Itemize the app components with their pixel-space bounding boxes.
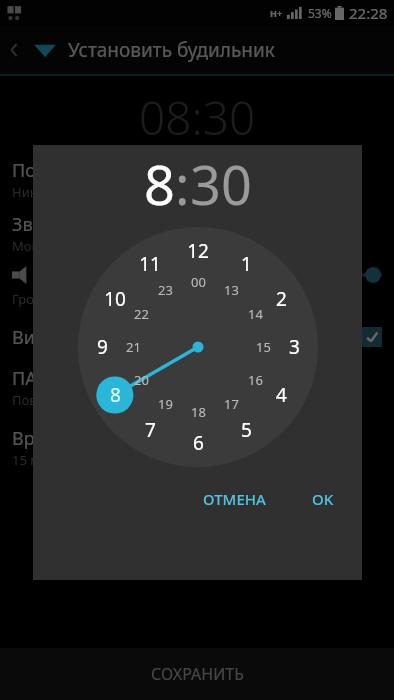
staticText: 18 bbox=[191, 403, 206, 421]
staticText: ПАУЗА bbox=[12, 366, 70, 391]
button[interactable]: 16 bbox=[240, 365, 270, 395]
button[interactable]: 18 bbox=[183, 397, 213, 427]
staticText: СОХРАНИТЬ bbox=[151, 663, 244, 685]
button[interactable]: ОТМЕНА bbox=[189, 481, 280, 517]
staticText: Время до повтора звонка bbox=[12, 426, 236, 451]
staticText: 00 bbox=[191, 273, 206, 291]
button[interactable]: 8 bbox=[100, 380, 130, 410]
button[interactable]: Время до повтора звонка bbox=[0, 420, 394, 474]
button[interactable]: 9 bbox=[87, 332, 117, 362]
button[interactable]: 7 bbox=[135, 415, 165, 445]
button[interactable]: 3 bbox=[279, 332, 309, 362]
staticText: 6 bbox=[193, 430, 204, 456]
staticText: 5 bbox=[241, 417, 252, 443]
staticText: H+ bbox=[270, 7, 283, 19]
staticText: Мой сигнал bbox=[12, 237, 86, 255]
staticText: 13 bbox=[224, 281, 239, 299]
staticText: 22:28 bbox=[349, 3, 388, 23]
staticText: 9 bbox=[97, 334, 108, 360]
staticText: 2 bbox=[276, 286, 287, 312]
staticText: Повторный сигнал будильника bbox=[12, 391, 208, 409]
button[interactable]: 2 bbox=[266, 284, 296, 314]
staticText: 1 bbox=[241, 251, 252, 277]
button[interactable]: 11 bbox=[135, 249, 165, 279]
button[interactable]: 13 bbox=[216, 275, 246, 305]
staticText: : bbox=[175, 147, 190, 221]
button[interactable]: 1 bbox=[231, 249, 261, 279]
staticText: 17 bbox=[224, 395, 239, 413]
staticText: 23 bbox=[158, 281, 173, 299]
staticText: Громкость bbox=[12, 290, 78, 308]
staticText: 20 bbox=[134, 371, 149, 389]
staticText: 15 bbox=[256, 338, 271, 356]
button[interactable]: СОХРАНИТЬ bbox=[0, 648, 394, 700]
staticText: OK bbox=[312, 489, 334, 509]
button[interactable]: 4 bbox=[266, 380, 296, 410]
staticText: 12 bbox=[187, 238, 209, 264]
button[interactable]: 14 bbox=[240, 299, 270, 329]
button[interactable]: 19 bbox=[150, 389, 180, 419]
button[interactable]: 10 bbox=[100, 284, 130, 314]
staticText: 15 минут bbox=[12, 451, 69, 469]
button[interactable]: 15 bbox=[248, 332, 278, 362]
button[interactable]: 5 bbox=[231, 415, 261, 445]
staticText: ОТМЕНА bbox=[203, 489, 266, 509]
button[interactable]: 21 bbox=[118, 332, 148, 362]
button[interactable]: 23 bbox=[150, 275, 180, 305]
button[interactable]: Вибрация bbox=[0, 314, 394, 360]
staticText: Повторять bbox=[12, 158, 105, 183]
staticText: 08:30 bbox=[139, 86, 256, 149]
button[interactable]: OK bbox=[298, 481, 348, 517]
button[interactable]: ПАУЗА bbox=[0, 360, 394, 414]
staticText: 11 bbox=[139, 251, 161, 277]
staticText: 8 bbox=[110, 382, 121, 408]
button[interactable]: 12 bbox=[183, 236, 213, 266]
staticText: Звонок будильника bbox=[12, 212, 182, 237]
staticText: Установить будильник bbox=[68, 37, 275, 63]
staticText: 10 bbox=[104, 286, 126, 312]
button[interactable]: Звонок будильника bbox=[0, 206, 394, 260]
staticText: 22 bbox=[134, 305, 149, 323]
button[interactable]: 22 bbox=[126, 299, 156, 329]
button[interactable]: 8 bbox=[144, 147, 175, 221]
staticText: 4 bbox=[276, 382, 287, 408]
staticText: 53% bbox=[308, 5, 332, 21]
staticText: 7 bbox=[145, 417, 156, 443]
staticText: Никогда bbox=[12, 183, 65, 201]
staticText: 14 bbox=[248, 305, 263, 323]
button[interactable]: 20 bbox=[126, 365, 156, 395]
staticText: Вибрация bbox=[12, 325, 100, 350]
staticText: 3 bbox=[289, 334, 300, 360]
staticText: 16 bbox=[248, 371, 263, 389]
button[interactable]: 00 bbox=[183, 267, 213, 297]
button[interactable]: 17 bbox=[216, 389, 246, 419]
button[interactable]: Повторять bbox=[0, 152, 394, 206]
staticText: 19 bbox=[158, 395, 173, 413]
button[interactable]: Громкость bbox=[0, 260, 394, 314]
button[interactable]: 30 bbox=[190, 147, 252, 221]
button[interactable]: Back bbox=[0, 36, 28, 64]
button[interactable]: 6 bbox=[183, 428, 213, 458]
staticText: 21 bbox=[126, 338, 141, 356]
